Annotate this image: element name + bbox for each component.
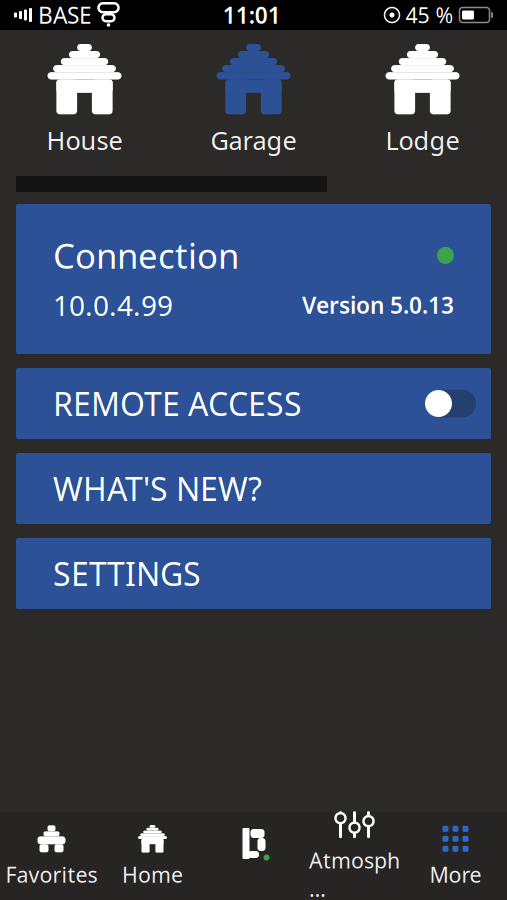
staticText: 10.0.4.99 — [53, 286, 173, 324]
button[interactable]: Connection — [16, 204, 491, 354]
button[interactable]: Atmosphere — [304, 821, 405, 891]
staticText: Version 5.0.13 — [302, 290, 454, 320]
button[interactable]: REMOTE ACCESS — [16, 368, 491, 439]
staticText: Connection — [53, 232, 239, 278]
button[interactable]: Garage — [169, 44, 338, 174]
staticText: Garage — [210, 123, 296, 157]
button[interactable]: WHAT'S NEW? — [16, 453, 491, 524]
button[interactable]: Lodge — [338, 44, 507, 174]
button[interactable]: Dashboard — [203, 821, 304, 891]
staticText: BASE — [38, 0, 92, 30]
button[interactable]: Favorites — [1, 821, 102, 891]
staticText: Atmosph… — [309, 846, 400, 900]
staticText: Lodge — [385, 123, 459, 157]
staticText: 11:01 — [223, 0, 281, 30]
staticText: WHAT'S NEW? — [53, 467, 262, 510]
staticText: Favorites — [5, 860, 97, 889]
button[interactable]: More — [405, 821, 506, 891]
button[interactable]: Home — [102, 821, 203, 891]
staticText: REMOTE ACCESS — [53, 382, 302, 425]
button[interactable]: SETTINGS — [16, 538, 491, 609]
staticText: House — [46, 123, 122, 157]
staticText: 45 % — [405, 1, 453, 29]
staticText: More — [429, 860, 481, 889]
staticText: SETTINGS — [53, 552, 201, 595]
button[interactable]: House — [0, 44, 169, 174]
staticText: Home — [122, 860, 183, 889]
